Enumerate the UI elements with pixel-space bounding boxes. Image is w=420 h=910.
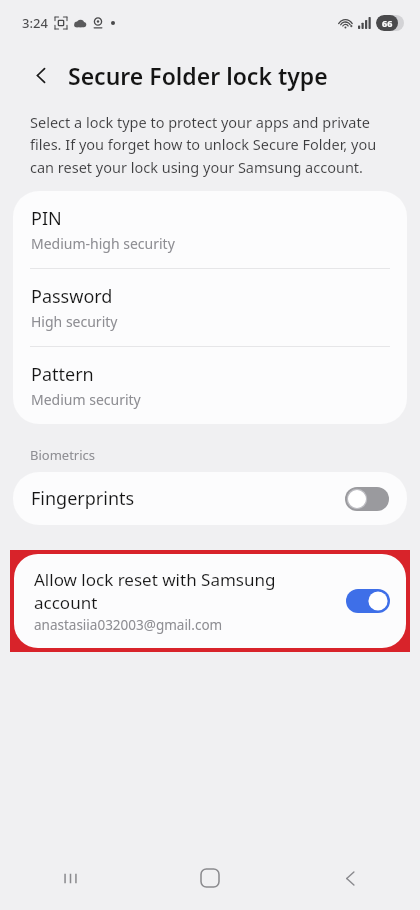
staticText: 66 [382,17,393,29]
staticText: Password [31,284,113,309]
button[interactable]: On [346,589,390,613]
staticText: Medium security [31,390,141,409]
button[interactable]: Pattern [13,347,407,424]
button[interactable]: Recent apps [0,846,140,910]
staticText: 3:24 [22,14,48,32]
staticText: Select a lock type to protect your apps … [30,112,384,177]
staticText: Secure Folder lock type [68,60,328,91]
staticText: High security [31,312,118,331]
button[interactable]: Back [280,846,420,910]
staticText: Biometrics [30,446,96,464]
button[interactable]: Home [140,846,280,910]
staticText: Medium-high security [31,234,175,253]
button[interactable]: Back [24,58,58,92]
staticText: Fingerprints [31,486,345,511]
button[interactable]: Fingerprints [13,472,407,525]
button[interactable]: PIN [13,191,407,268]
staticText: Pattern [31,362,94,387]
staticText: Allow lock reset with Samsung account [34,568,332,614]
button[interactable]: Allow lock reset with Samsung account [14,554,406,648]
button[interactable]: Off [345,487,389,511]
button[interactable]: Password [13,269,407,346]
staticText: anastasiia032003@gmail.com [34,616,223,634]
staticText: PIN [31,206,62,231]
